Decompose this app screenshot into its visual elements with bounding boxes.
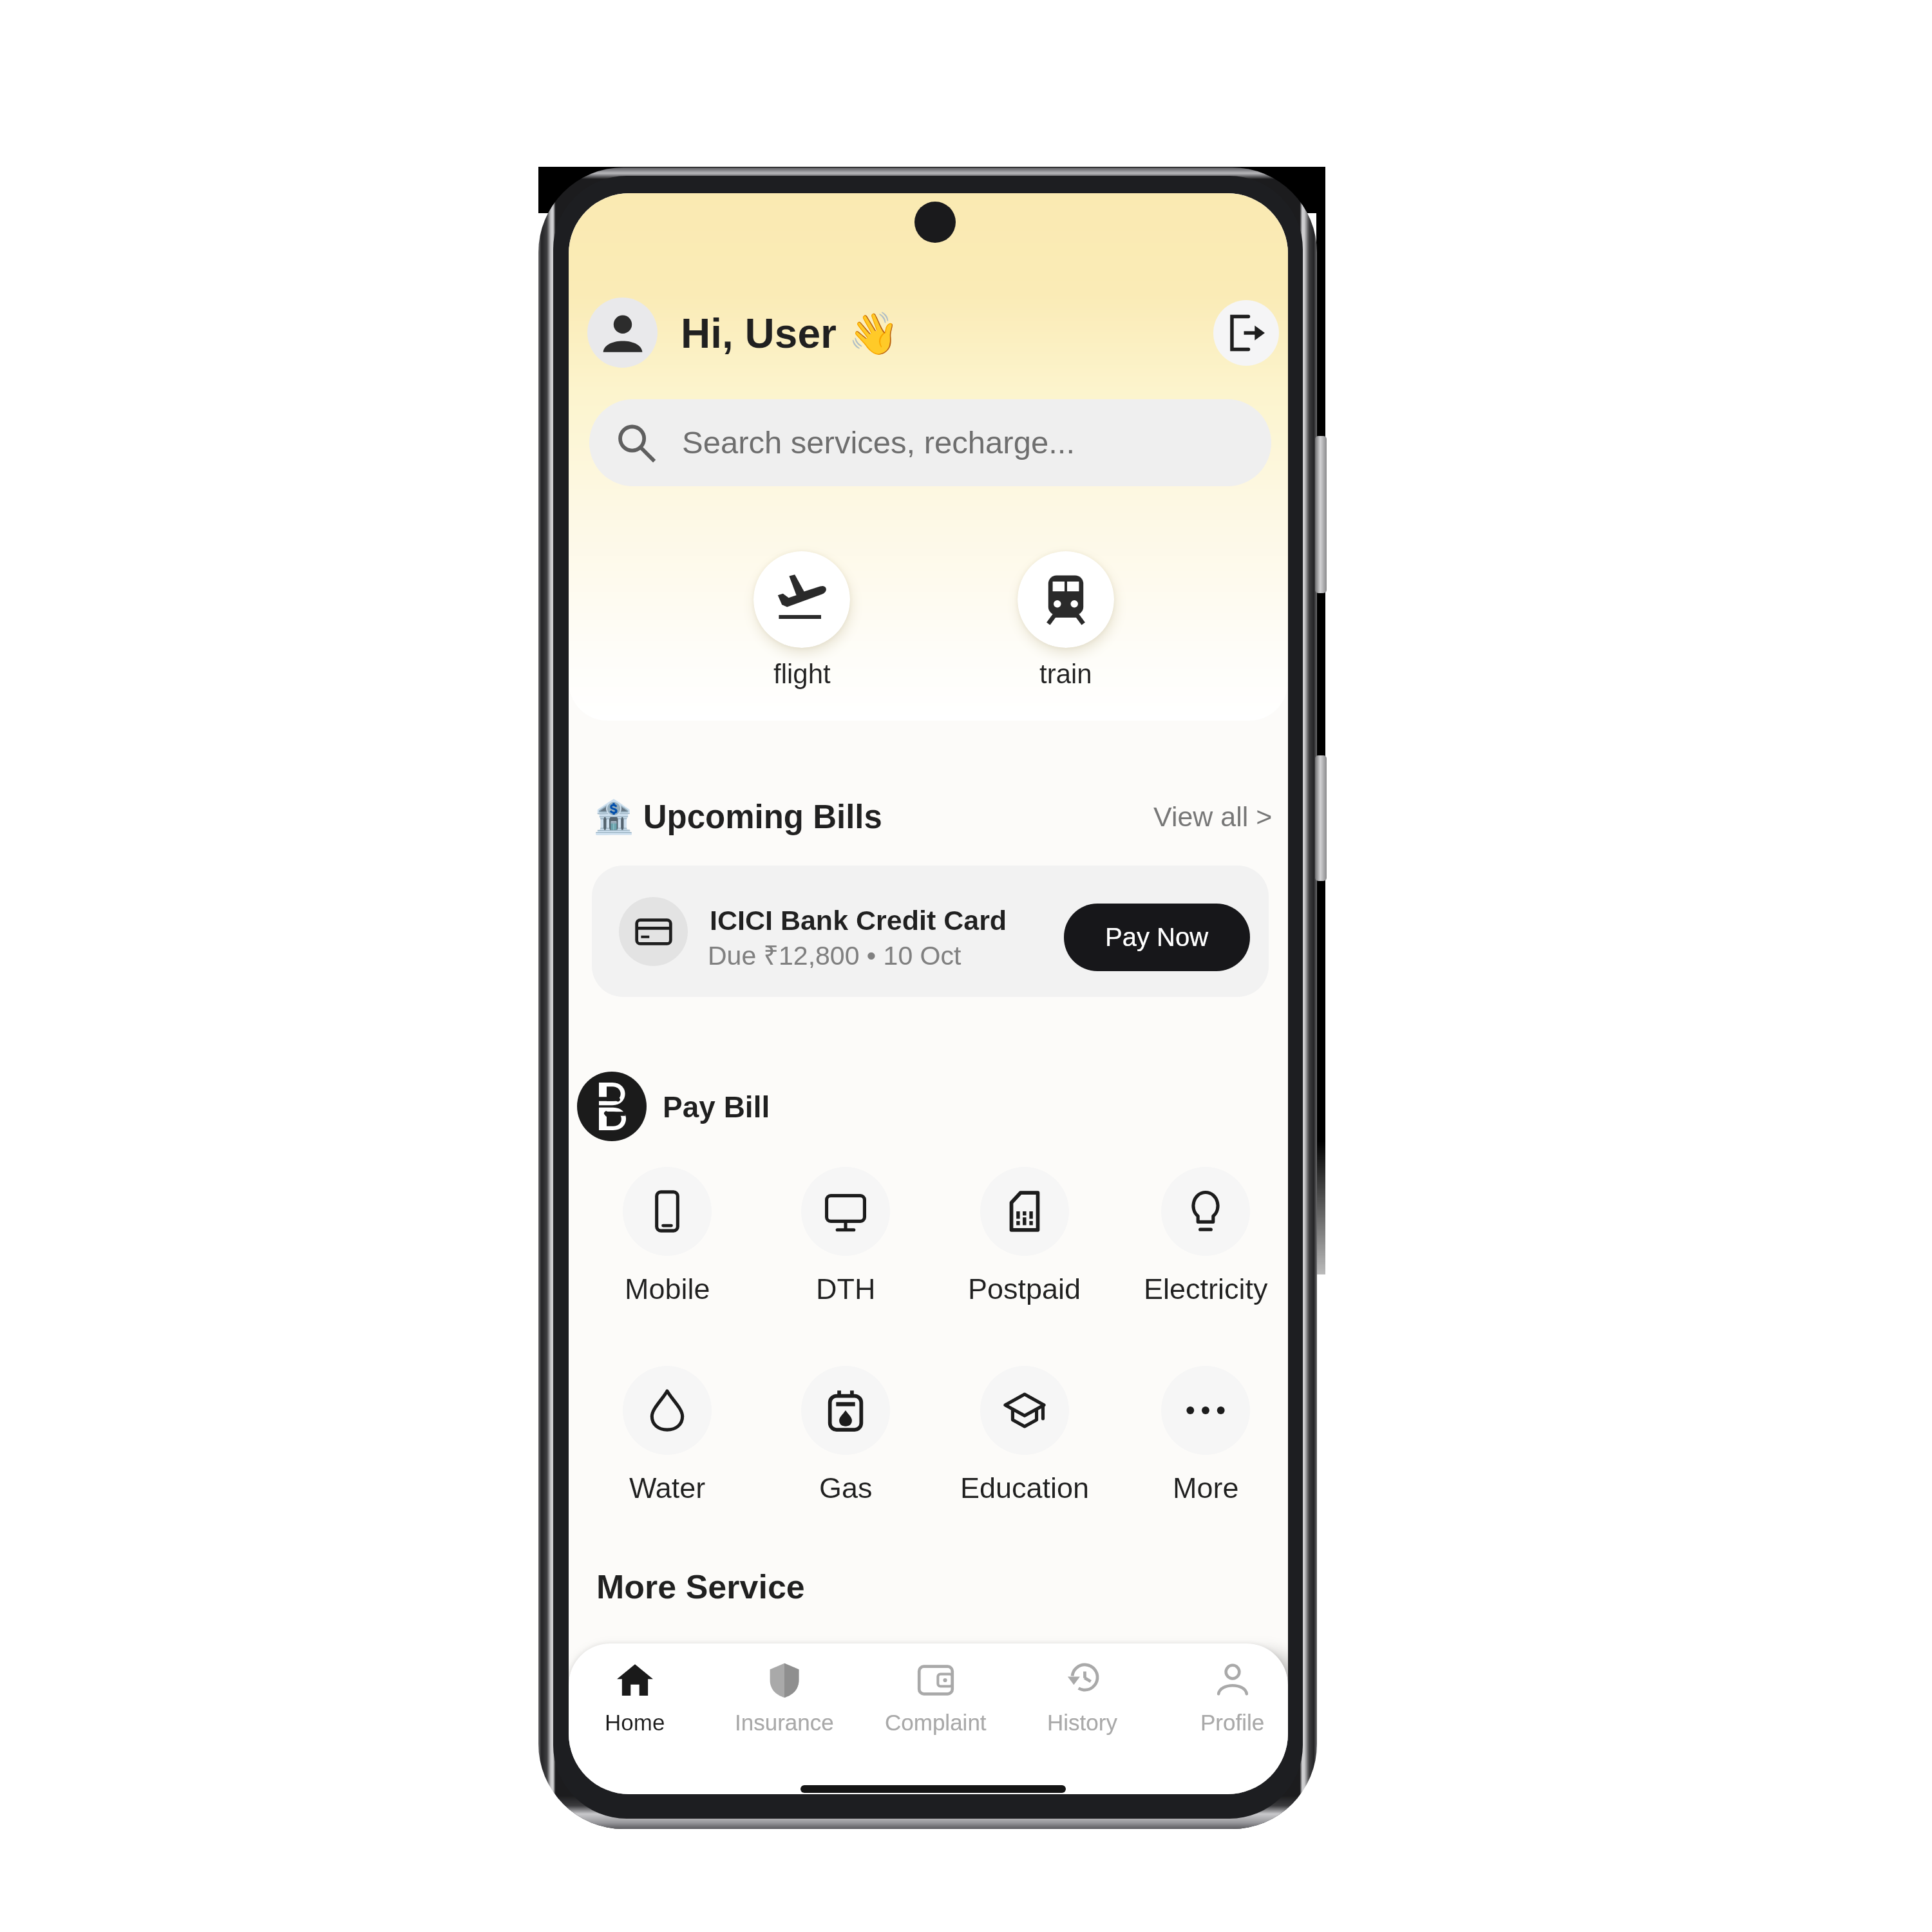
- staticText: Postpaid: [968, 1273, 1081, 1305]
- staticText: train: [1039, 659, 1092, 689]
- staticText: Pay Now: [1105, 923, 1209, 952]
- button[interactable]: Mobile: [583, 1167, 751, 1315]
- staticText: ICICI Bank Credit Card: [710, 905, 1007, 936]
- staticText: Hi, User 👋: [681, 310, 900, 358]
- button[interactable]: Education: [941, 1366, 1108, 1514]
- staticText: Search services, recharge...: [682, 425, 1075, 460]
- staticText: History: [1047, 1710, 1117, 1735]
- button[interactable]: [753, 551, 850, 648]
- button[interactable]: Home: [569, 1662, 703, 1759]
- staticText: Water: [629, 1472, 706, 1504]
- staticText: Due ₹12,800 • 10 Oct: [708, 936, 961, 972]
- button[interactable]: Profile: [587, 298, 658, 368]
- button[interactable]: Electricity: [1122, 1167, 1288, 1315]
- staticText: 🏦 Upcoming Bills: [593, 798, 882, 837]
- staticText: Pay Bill: [663, 1090, 770, 1123]
- button[interactable]: Search services, recharge...: [589, 399, 1271, 486]
- staticText: Gas: [819, 1472, 873, 1504]
- button[interactable]: DTH: [762, 1167, 929, 1315]
- staticText: Electricity: [1144, 1273, 1268, 1305]
- staticText: DTH: [816, 1273, 876, 1305]
- button[interactable]: [1018, 551, 1114, 648]
- button[interactable]: View all >: [1149, 789, 1276, 844]
- staticText: More Service: [596, 1568, 805, 1605]
- staticText: flight: [773, 659, 831, 689]
- staticText: More: [1173, 1472, 1239, 1504]
- button[interactable]: Water: [583, 1366, 751, 1514]
- staticText: Education: [960, 1472, 1090, 1504]
- button[interactable]: Profile: [1165, 1662, 1288, 1759]
- button[interactable]: Insurance: [717, 1662, 852, 1759]
- button[interactable]: More: [1122, 1366, 1288, 1514]
- staticText: Complaint: [885, 1710, 987, 1735]
- button[interactable]: ICICI Bank Credit Card: [592, 866, 1269, 997]
- staticText: Home: [605, 1710, 665, 1735]
- button[interactable]: Complaint: [868, 1662, 1003, 1759]
- staticText: Insurance: [735, 1710, 834, 1735]
- button[interactable]: Logout: [1213, 300, 1279, 366]
- button[interactable]: History: [1014, 1662, 1150, 1759]
- button[interactable]: Pay Bill: [577, 1072, 783, 1141]
- button[interactable]: Gas: [762, 1366, 929, 1514]
- button[interactable]: Pay Now: [1064, 904, 1250, 971]
- staticText: Profile: [1200, 1710, 1265, 1735]
- staticText: Mobile: [625, 1273, 710, 1305]
- staticText: View all >: [1153, 801, 1273, 832]
- button[interactable]: Postpaid: [941, 1167, 1108, 1315]
